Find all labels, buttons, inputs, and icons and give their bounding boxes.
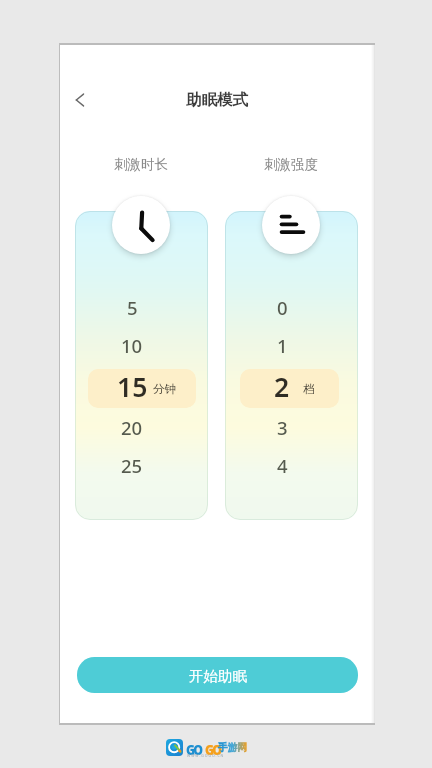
staticText: GO (186, 740, 202, 759)
staticText: 0 (277, 295, 288, 320)
staticText: 2 (274, 369, 290, 405)
button[interactable]: 20 (88, 410, 195, 444)
staticText: 15 (117, 369, 148, 405)
button[interactable]: 1 (238, 328, 345, 362)
staticText: 刺激时长 (114, 156, 168, 173)
staticText: W W W . G O G O . C N (187, 753, 224, 758)
button[interactable]: 10 (88, 328, 195, 362)
button[interactable]: Back (64, 84, 96, 116)
button[interactable]: 3 (238, 410, 345, 444)
staticText: 10 (121, 333, 143, 358)
staticText: 3 (277, 415, 288, 440)
staticText: 1 (277, 333, 288, 358)
staticText: 4 (277, 453, 288, 478)
button[interactable]: 15 (88, 369, 196, 408)
button[interactable]: 5 (88, 290, 195, 324)
staticText: 刺激强度 (264, 156, 318, 173)
staticText: 助眠模式 (186, 90, 248, 110)
button[interactable]: 4 (238, 448, 345, 482)
button[interactable]: 25 (88, 448, 195, 482)
staticText: 分钟 (153, 382, 176, 396)
staticText: GO (205, 740, 221, 759)
button[interactable]: 2 (240, 369, 339, 408)
staticText: 开始助眠 (189, 667, 247, 685)
staticText: 20 (121, 415, 143, 440)
button[interactable]: 开始助眠 (77, 657, 358, 693)
staticText: 25 (121, 453, 143, 478)
button[interactable]: 0 (238, 290, 345, 324)
staticText: 档 (303, 382, 315, 396)
staticText: 手游网 (218, 741, 247, 754)
staticText: 5 (127, 295, 138, 320)
